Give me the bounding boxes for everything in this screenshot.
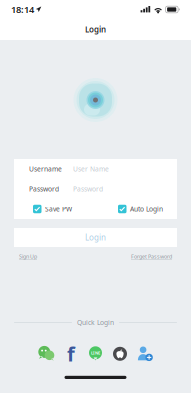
button[interactable]: Sign in with LINE (83, 345, 108, 363)
staticText: 18:14 (11, 3, 34, 16)
button[interactable]: Sign in with WeChat (34, 345, 59, 363)
button[interactable]: Sign in with account (132, 345, 157, 363)
button[interactable]: Sign Up (19, 253, 37, 260)
button[interactable]: Login (14, 228, 177, 247)
staticText: LINE (91, 350, 100, 356)
staticText: Auto Login (130, 205, 163, 213)
staticText: Login (85, 24, 106, 35)
staticText: Quick Login (77, 318, 114, 327)
staticText: Username (29, 165, 62, 173)
staticText: Sign Up (19, 253, 37, 260)
button[interactable]: Save PW (33, 205, 72, 213)
button[interactable]: Sign in with Facebook (59, 345, 83, 363)
button[interactable]: Sign in with Apple (108, 345, 132, 363)
staticText: Forget Password (131, 253, 172, 260)
staticText: Password (29, 185, 59, 193)
staticText: Password (73, 185, 103, 193)
staticText: Save PW (45, 205, 72, 213)
staticText: Login (85, 232, 106, 243)
staticText: f (67, 340, 75, 367)
staticText: User Name (73, 165, 109, 173)
button[interactable]: Forget Password (131, 253, 172, 260)
button[interactable]: Auto Login (118, 205, 163, 213)
